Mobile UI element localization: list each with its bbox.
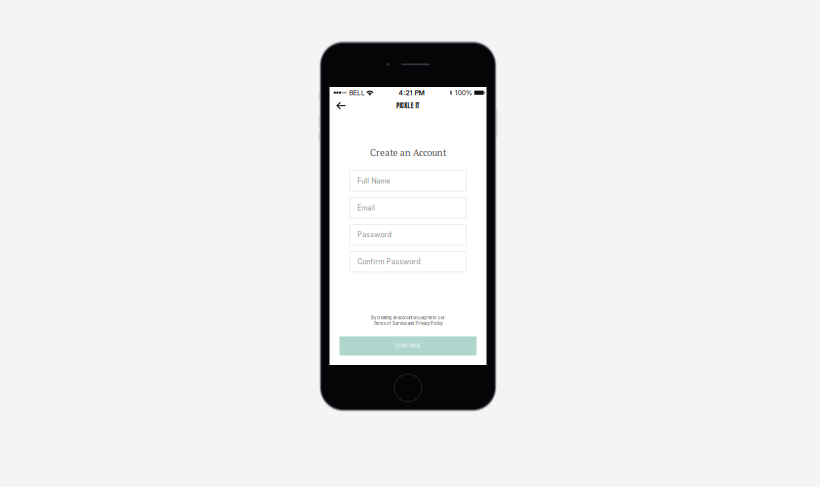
staticText: Email xyxy=(357,203,375,212)
button[interactable]: Back xyxy=(332,98,349,114)
staticText: Password xyxy=(357,230,391,239)
staticText: PICKLE IT xyxy=(396,101,420,110)
staticText: Confirm Password xyxy=(357,257,420,266)
staticText: By creating an account you agree to our xyxy=(371,315,445,320)
button[interactable]: CONTINUE xyxy=(339,336,476,355)
staticText: 4:21 PM xyxy=(398,89,424,97)
staticText: Terms of Service and Privacy Policy xyxy=(373,321,442,326)
staticText: Full Name xyxy=(357,176,390,185)
staticText: BELL xyxy=(349,89,365,97)
staticText: Create an Account xyxy=(370,146,446,159)
staticText: 100% xyxy=(455,89,473,97)
staticText: CONTINUE xyxy=(395,343,421,349)
